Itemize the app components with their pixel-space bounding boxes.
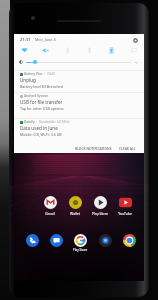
- button[interactable]: CLEAR ALL: [117, 144, 138, 152]
- button[interactable]: Play Store: [89, 196, 111, 216]
- button[interactable]: Auto rotate: [100, 44, 122, 56]
- staticText: Play Store: [69, 248, 91, 252]
- staticText: Mobile: 0 B, Wi-Fi: 3.6 GB: [20, 132, 62, 137]
- staticText: Data used in June: [20, 125, 58, 131]
- button[interactable]: Camera: [96, 231, 114, 249]
- staticText: • 20:45: [44, 72, 56, 76]
- staticText: Mon, June 4: [35, 37, 56, 42]
- staticText: 21:31: [20, 37, 31, 43]
- staticText: Unplug: [20, 77, 36, 83]
- staticText: Gmail: [45, 211, 55, 216]
- button[interactable]: Google: [71, 231, 89, 249]
- button[interactable]: Datally: [14, 120, 144, 137]
- staticText: Battery Plus: [24, 72, 43, 76]
- button[interactable]: Settings: [131, 36, 139, 44]
- staticText: Android System: [24, 94, 49, 98]
- staticText: YouTube: [118, 211, 132, 216]
- staticText: Play Store: [92, 211, 108, 216]
- staticText: Datally: [24, 120, 35, 124]
- button[interactable]: Battery Plus: [14, 72, 144, 89]
- button[interactable]: Wi-Fi: [14, 44, 35, 56]
- staticText: USB for file transfer: [20, 99, 63, 105]
- staticText: • Bandwidth: 4.0 Mb/s: [36, 120, 70, 124]
- button[interactable]: Bluetooth: [56, 44, 78, 56]
- button[interactable]: YouTube: [114, 196, 136, 216]
- staticText: CLEAR ALL: [119, 146, 136, 150]
- button[interactable]: Phone: [23, 231, 41, 249]
- button[interactable]: BLOCK NOTIFICATIONS: [73, 144, 114, 152]
- button[interactable]: Gmail: [39, 196, 61, 216]
- staticText: BLOCK NOTIFICATIONS: [75, 146, 112, 150]
- button[interactable]: Messages: [47, 231, 65, 249]
- button[interactable]: Cast: [122, 44, 144, 56]
- button[interactable]: Wallet: [64, 196, 86, 216]
- staticText: Tap for other USB options.: [20, 106, 65, 111]
- button[interactable]: Flashlight: [78, 44, 100, 56]
- staticText: Battery level 83 Breached: [20, 84, 63, 89]
- staticText: Wallet: [70, 211, 80, 216]
- button[interactable]: Chrome: [120, 231, 138, 249]
- button[interactable]: Android System: [14, 94, 144, 111]
- button[interactable]: Sound: [35, 44, 56, 56]
